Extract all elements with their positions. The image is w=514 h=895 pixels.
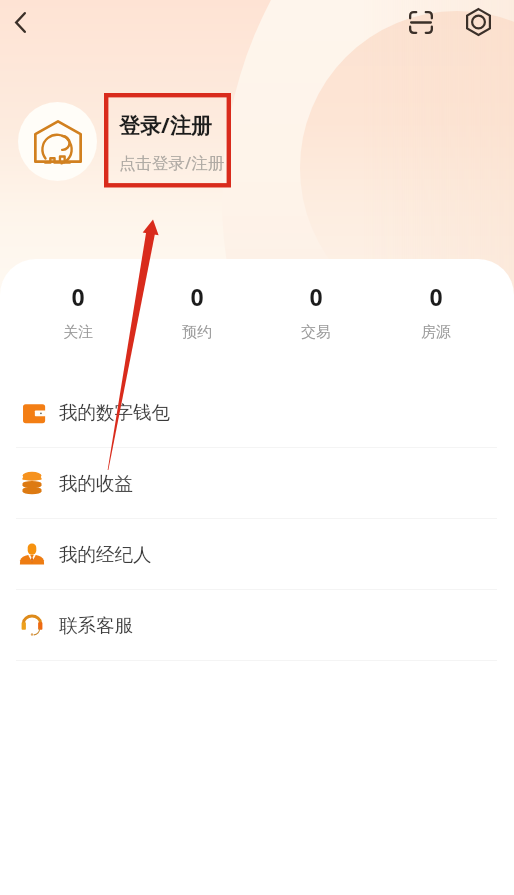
staticText: 我的数字钱包 bbox=[59, 401, 170, 424]
button[interactable]: 0 bbox=[256, 281, 376, 342]
staticText: 0 bbox=[71, 281, 85, 312]
button[interactable]: Scan QR code bbox=[401, 2, 441, 42]
staticText: 登录/注册 bbox=[119, 111, 212, 140]
staticText: 房源 bbox=[421, 323, 451, 342]
staticText: 我的经纪人 bbox=[59, 543, 152, 566]
staticText: 预约 bbox=[182, 323, 212, 342]
staticText: 我的收益 bbox=[59, 472, 133, 495]
button[interactable]: 我的经纪人 bbox=[0, 519, 514, 590]
button[interactable]: Back bbox=[0, 2, 40, 42]
button[interactable]: Avatar bbox=[18, 102, 97, 181]
button[interactable]: 我的数字钱包 bbox=[0, 377, 514, 448]
staticText: 联系客服 bbox=[59, 614, 133, 637]
button[interactable]: Settings bbox=[458, 2, 498, 42]
staticText: 关注 bbox=[63, 323, 93, 342]
button[interactable]: 0 bbox=[137, 281, 256, 342]
button[interactable]: 联系客服 bbox=[0, 590, 514, 661]
staticText: 点击登录/注册 bbox=[119, 151, 225, 174]
staticText: 0 bbox=[190, 281, 204, 312]
staticText: 交易 bbox=[301, 323, 331, 342]
button[interactable]: 0 bbox=[18, 281, 137, 342]
button[interactable]: 我的收益 bbox=[0, 448, 514, 519]
staticText: 0 bbox=[309, 281, 323, 312]
staticText: 0 bbox=[429, 281, 443, 312]
button[interactable]: 登录/注册 bbox=[119, 111, 225, 174]
button[interactable]: 0 bbox=[376, 281, 496, 342]
